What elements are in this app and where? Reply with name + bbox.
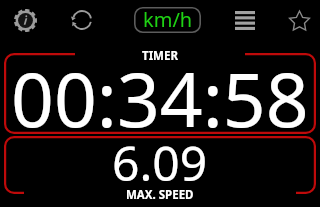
staticText: TIMER [142,48,178,61]
button[interactable]: Reset [62,0,102,40]
staticText: 6.09 [112,130,208,195]
button[interactable]: Menu [225,0,265,40]
staticText: 00:34:58 [11,47,309,149]
button[interactable]: km/h [134,7,201,33]
button[interactable]: Info [5,0,45,40]
staticText: km/h [143,6,193,32]
button[interactable]: Favorite [279,0,319,40]
staticText: MAX. SPEED [126,187,194,200]
